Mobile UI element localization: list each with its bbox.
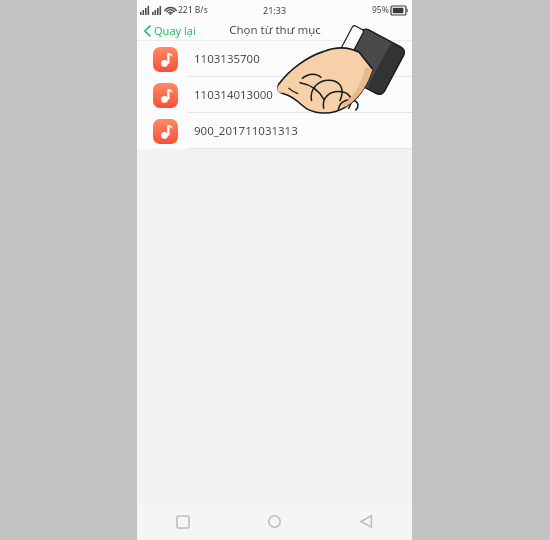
staticText: 900_201711031313 bbox=[194, 123, 298, 139]
button[interactable]: Back bbox=[320, 503, 412, 540]
staticText: 221 B/s bbox=[178, 4, 208, 16]
button[interactable]: 900_201711031313 bbox=[137, 113, 412, 149]
button[interactable]: Home bbox=[228, 503, 320, 540]
button[interactable]: 1103135700 bbox=[137, 41, 412, 77]
button[interactable]: Quay lại bbox=[137, 21, 204, 40]
staticText: Quay lại bbox=[154, 23, 196, 38]
staticText: 110314013000 bbox=[194, 87, 273, 103]
button[interactable]: Recents bbox=[137, 503, 228, 540]
staticText: 1103135700 bbox=[194, 51, 260, 67]
staticText: 21:33 bbox=[263, 4, 287, 16]
button[interactable]: 110314013000 bbox=[137, 77, 412, 113]
staticText: Chọn từ thư mục bbox=[229, 22, 321, 38]
staticText: 95% bbox=[372, 4, 389, 16]
